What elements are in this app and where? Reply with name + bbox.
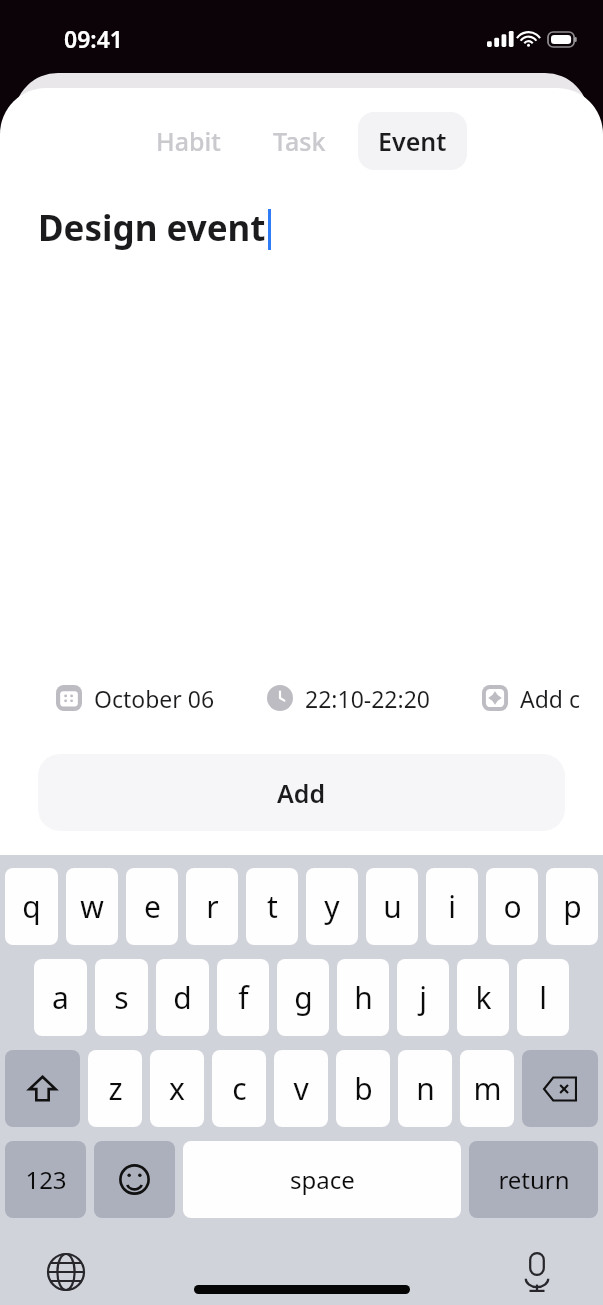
staticText: a [52, 977, 69, 1018]
staticText: 22:10-22:20 [305, 683, 430, 714]
staticText: f [238, 977, 249, 1018]
staticText: z [108, 1068, 123, 1109]
button[interactable]: Emoji [94, 1141, 175, 1218]
staticText: j [419, 977, 427, 1018]
staticText: Habit [156, 124, 221, 158]
button[interactable]: n [398, 1050, 452, 1127]
button[interactable]: b [336, 1050, 390, 1127]
staticText: g [294, 977, 313, 1018]
staticText: Add c [520, 683, 581, 714]
staticText: space [290, 1163, 355, 1196]
staticText: k [475, 977, 492, 1018]
staticText: c [232, 1068, 247, 1109]
button[interactable]: return [469, 1141, 598, 1218]
button[interactable]: c [212, 1050, 266, 1127]
button[interactable]: u [366, 868, 418, 945]
button[interactable]: Change keyboard language [42, 1248, 90, 1296]
button[interactable]: t [246, 868, 298, 945]
button[interactable]: p [546, 868, 598, 945]
staticText: x [169, 1068, 185, 1109]
button[interactable]: m [460, 1050, 514, 1127]
staticText: Design event [38, 204, 266, 252]
staticText: i [448, 886, 456, 927]
button[interactable]: y [306, 868, 358, 945]
button[interactable]: s [95, 959, 148, 1036]
button[interactable]: j [397, 959, 449, 1036]
staticText: October 06 [94, 683, 215, 714]
staticText: e [144, 886, 161, 927]
button[interactable]: Backspace [522, 1050, 598, 1127]
staticText: Event [378, 124, 447, 158]
button[interactable]: Task [253, 112, 346, 170]
button[interactable]: x [150, 1050, 204, 1127]
button[interactable]: l [517, 959, 569, 1036]
button[interactable]: October 06 [38, 668, 233, 728]
staticText: y [324, 886, 340, 927]
button[interactable]: z [88, 1050, 142, 1127]
button[interactable]: Event [358, 112, 467, 170]
staticText: n [416, 1068, 435, 1109]
button[interactable]: q [5, 868, 58, 945]
staticText: l [539, 977, 547, 1018]
staticText: o [503, 886, 522, 927]
button[interactable]: Dictation [513, 1248, 561, 1296]
button[interactable]: o [486, 868, 538, 945]
button[interactable]: i [426, 868, 478, 945]
button[interactable]: e [126, 868, 178, 945]
button[interactable]: f [217, 959, 269, 1036]
staticText: m [473, 1068, 502, 1109]
button[interactable]: Add c [464, 668, 599, 728]
button[interactable]: Shift [5, 1050, 80, 1127]
staticText: h [354, 977, 373, 1018]
staticText: d [173, 977, 192, 1018]
staticText: p [563, 886, 582, 927]
staticText: return [498, 1163, 570, 1196]
button[interactable]: v [274, 1050, 328, 1127]
staticText: v [293, 1068, 309, 1109]
button[interactable]: w [66, 868, 118, 945]
staticText: r [206, 886, 219, 927]
button[interactable]: a [34, 959, 87, 1036]
staticText: Add [277, 776, 326, 810]
staticText: 09:41 [64, 23, 123, 54]
staticText: q [22, 886, 41, 927]
staticText: b [354, 1068, 373, 1109]
staticText: 123 [25, 1163, 67, 1196]
button[interactable]: k [457, 959, 509, 1036]
staticText: t [267, 886, 278, 927]
button[interactable]: Habit [136, 112, 241, 170]
button[interactable]: r [186, 868, 238, 945]
button[interactable]: 123 [5, 1141, 86, 1218]
button[interactable]: space [183, 1141, 461, 1218]
button[interactable]: Add [38, 754, 565, 831]
button[interactable]: h [337, 959, 389, 1036]
staticText: w [80, 886, 104, 927]
button[interactable]: 22:10-22:20 [249, 668, 448, 728]
staticText: s [114, 977, 129, 1018]
button[interactable]: d [156, 959, 209, 1036]
staticText: Task [273, 124, 326, 158]
button[interactable]: g [277, 959, 329, 1036]
staticText: u [383, 886, 402, 927]
